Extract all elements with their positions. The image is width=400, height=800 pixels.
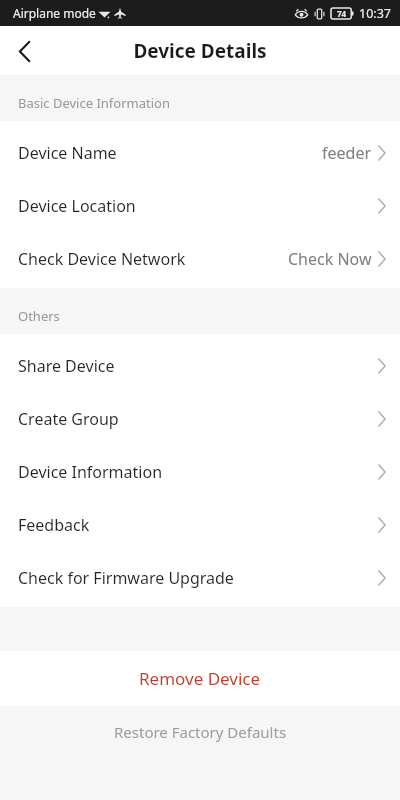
- button[interactable]: Device Location: [0, 179, 400, 232]
- staticText: 10:37: [359, 5, 391, 22]
- button[interactable]: Check for Firmware Upgrade: [0, 551, 400, 604]
- staticText: Check Device Network: [18, 248, 186, 270]
- button[interactable]: Share Device: [0, 339, 400, 392]
- staticText: Check Now: [288, 248, 372, 270]
- button[interactable]: Device Name: [0, 126, 400, 179]
- button[interactable]: Remove Device: [0, 651, 400, 706]
- staticText: feeder: [322, 142, 372, 164]
- button[interactable]: Restore Factory Defaults: [0, 706, 400, 758]
- staticText: Device Name: [18, 142, 117, 164]
- staticText: Feedback: [18, 514, 90, 536]
- staticText: Device Location: [18, 195, 136, 217]
- staticText: Restore Factory Defaults: [114, 722, 287, 742]
- staticText: Others: [18, 307, 60, 325]
- staticText: Check for Firmware Upgrade: [18, 567, 234, 589]
- staticText: 74: [337, 8, 347, 19]
- staticText: Remove Device: [139, 667, 261, 690]
- button[interactable]: Device Information: [0, 445, 400, 498]
- staticText: Share Device: [18, 355, 115, 377]
- staticText: Device Details: [133, 38, 267, 64]
- button[interactable]: Back: [0, 27, 48, 75]
- button[interactable]: Feedback: [0, 498, 400, 551]
- staticText: Device Information: [18, 461, 163, 483]
- staticText: Basic Device Information: [18, 94, 170, 112]
- staticText: Airplane mode: [13, 5, 96, 21]
- button[interactable]: Check Device Network: [0, 232, 400, 285]
- staticText: Create Group: [18, 408, 119, 430]
- button[interactable]: Create Group: [0, 392, 400, 445]
